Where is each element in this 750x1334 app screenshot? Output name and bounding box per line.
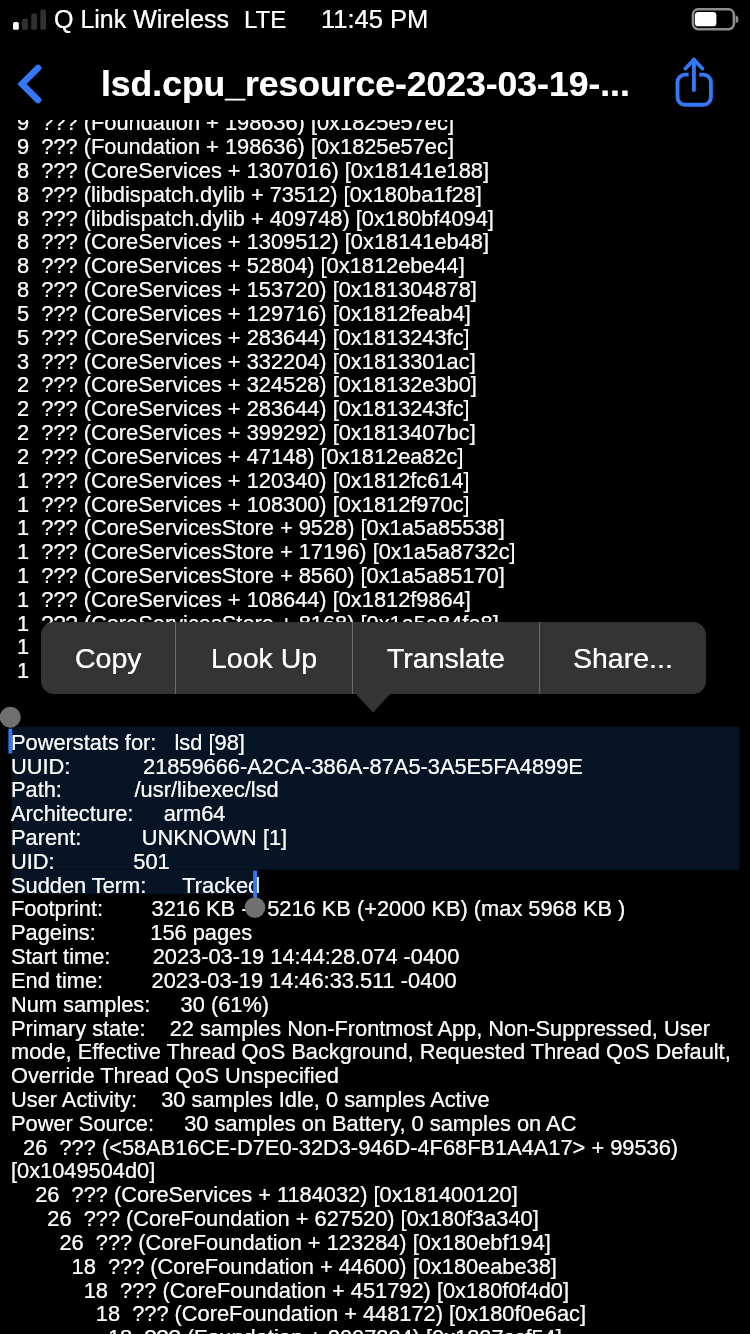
staticText: Override Thread QoS Unspecified: [11, 1063, 339, 1087]
staticText: Powerstats for: lsd [98]: [11, 730, 245, 754]
staticText: 2 ??? (CoreServices + 47148) [0x1812ea82…: [11, 444, 464, 468]
staticText: lsd.cpu_resource-2023-03-19-...: [101, 64, 630, 104]
staticText: LTE: [244, 6, 287, 33]
staticText: 3 ??? (CoreServices + 332204) [0x1813301…: [11, 349, 476, 373]
staticText: 1 ??? (CoreServicesStore + 9528) [0x1a5a…: [11, 634, 505, 658]
staticText: [0x1049504d0]: [11, 1158, 156, 1182]
staticText: 26 ??? (CoreFoundation + 123284) [0x180e…: [11, 1230, 551, 1254]
staticText: Q Link Wireless: [54, 5, 230, 33]
button[interactable]: Translate: [353, 622, 539, 694]
staticText: End time: 2023-03-19 14:46:33.511 -0400: [11, 968, 457, 992]
staticText: Primary state: 22 samples Non-Frontmost …: [11, 1016, 710, 1040]
staticText: 2 ??? (CoreServices + 399292) [0x1813407…: [11, 420, 476, 444]
staticText: 1 ??? (CoreServicesStore + 8560) [0x1a5a…: [11, 563, 505, 587]
staticText: Num samples: 30 (61%): [11, 992, 270, 1016]
staticText: 18 ??? (Foundation + 2007224) [0x1827ccf…: [11, 1325, 562, 1334]
button[interactable]: Look Up: [176, 622, 352, 694]
staticText: 1 ??? (CoreServicesStore + 9528) [0x1a5a…: [11, 515, 505, 539]
staticText: User Activity: 30 samples Idle, 0 sample…: [11, 1087, 490, 1111]
staticText: 1 ??? (CoreServices + 120340) [0x1812fc6…: [11, 468, 470, 492]
button[interactable]: Copy: [41, 622, 175, 694]
staticText: 1 ??? (CoreServices + 108644) [0x1812f98…: [11, 587, 471, 611]
staticText: Pageins: 156 pages: [11, 920, 253, 944]
staticText: 8 ??? (CoreServices + 153720) [0x1813048…: [11, 277, 477, 301]
button[interactable]: Share...: [540, 622, 706, 694]
staticText: Sudden Term: Tracked: [11, 873, 261, 897]
staticText: 2 ??? (CoreServices + 283644) [0x1813243…: [11, 396, 470, 420]
staticText: 5 ??? (CoreServices + 283644) [0x1813243…: [11, 325, 470, 349]
staticText: 18 ??? (CoreFoundation + 451792) [0x180f…: [11, 1278, 570, 1302]
staticText: 8 ??? (libdispatch.dylib + 73512) [0x180…: [11, 182, 482, 206]
button[interactable]: Share: [660, 50, 740, 120]
staticText: Copy: [75, 642, 142, 674]
staticText: mode, Effective Thread QoS Background, R…: [11, 1039, 731, 1063]
staticText: 8 ??? (CoreServices + 1307016) [0x18141e…: [11, 158, 490, 182]
staticText: Footprint: 3216 KB -> 5216 KB (+2000 KB)…: [11, 896, 626, 920]
staticText: 18 ??? (CoreFoundation + 448172) [0x180f…: [11, 1301, 586, 1325]
staticText: 1 ??? (CoreServicesStore + 8168) [0x1a5a…: [11, 611, 499, 635]
staticText: 8 ??? (CoreServices + 1309512) [0x18141e…: [11, 229, 490, 253]
staticText: Start time: 2023-03-19 14:44:28.074 -040…: [11, 944, 460, 968]
staticText: Parent: UNKNOWN [1]: [11, 825, 288, 849]
staticText: Share...: [573, 642, 673, 674]
staticText: 1 ??? (CoreServicesStore + 17196) [0x1a5…: [11, 539, 516, 563]
staticText: 8 ??? (CoreServices + 52804) [0x1812ebe4…: [11, 253, 465, 277]
staticText: 1 ??? (CoreServices + 108300) [0x1812f97…: [11, 492, 470, 516]
staticText: UID: 501: [11, 849, 170, 873]
staticText: 1 ??? (CoreServices + 120340) [0x1812fc6…: [11, 658, 470, 682]
staticText: 26 ??? (<58AB16CE-D7E0-32D3-946D-4F68FB1…: [11, 1135, 679, 1159]
staticText: 18 ??? (CoreFoundation + 44600) [0x180ea…: [11, 1254, 557, 1278]
staticText: 26 ??? (CoreFoundation + 627520) [0x180f…: [11, 1206, 539, 1230]
staticText: UUID: 21859666-A2CA-386A-87A5-3A5E5FA489…: [11, 754, 583, 778]
staticText: 9 ??? (Foundation + 198636) [0x1825e57ec…: [11, 110, 454, 134]
staticText: 8 ??? (libdispatch.dylib + 409748) [0x18…: [11, 206, 494, 230]
staticText: Translate: [387, 642, 505, 674]
staticText: 26 ??? (CoreServices + 1184032) [0x18140…: [11, 1182, 518, 1206]
staticText: Power Source: 30 samples on Battery, 0 s…: [11, 1111, 577, 1135]
staticText: Architecture: arm64: [11, 801, 226, 825]
staticText: 5 ??? (CoreServices + 129716) [0x1812fea…: [11, 301, 471, 325]
staticText: Look Up: [211, 642, 318, 674]
staticText: Path: /usr/libexec/lsd: [11, 777, 279, 801]
button[interactable]: Back: [0, 50, 60, 120]
staticText: 11:45 PM: [321, 5, 429, 33]
staticText: 2 ??? (CoreServices + 324528) [0x18132e3…: [11, 372, 477, 396]
staticText: 9 ??? (Foundation + 198636) [0x1825e57ec…: [11, 134, 454, 158]
